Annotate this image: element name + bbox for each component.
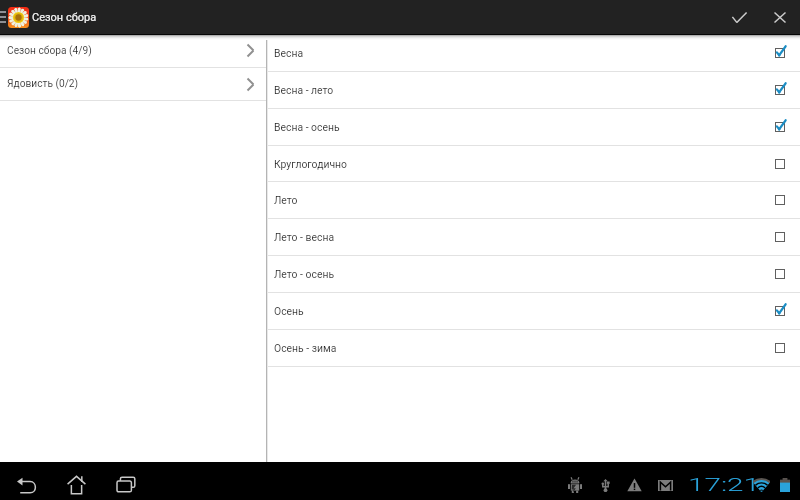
- button[interactable]: Recent apps: [108, 470, 144, 498]
- staticText: Весна - лето: [274, 84, 334, 96]
- staticText: Осень - зима: [274, 342, 337, 354]
- button[interactable]: Cancel: [760, 0, 799, 34]
- button[interactable]: Осень - зима: [268, 330, 800, 367]
- staticText: Весна: [274, 47, 304, 59]
- staticText: 17:21: [688, 473, 761, 495]
- staticText: Лето: [274, 194, 298, 206]
- staticText: Круглогодично: [274, 158, 348, 170]
- button[interactable]: Back: [8, 470, 44, 498]
- button[interactable]: Весна - лето: [268, 72, 800, 109]
- button[interactable]: USB connected: [601, 479, 610, 493]
- button[interactable]: Alert: [627, 478, 642, 492]
- staticText: Сезон сбора (4/9): [7, 45, 92, 57]
- button[interactable]: Лето - весна: [268, 219, 800, 256]
- staticText: Лето - осень: [274, 268, 335, 280]
- button[interactable]: Весна: [268, 34, 800, 72]
- button[interactable]: Home: [58, 471, 94, 499]
- staticText: Лето - весна: [274, 231, 335, 243]
- button[interactable]: Wi-Fi: [753, 478, 770, 492]
- staticText: Осень: [274, 305, 304, 317]
- button[interactable]: Весна - осень: [268, 109, 800, 146]
- button[interactable]: Осень: [268, 293, 800, 330]
- button[interactable]: New mail: [658, 480, 673, 491]
- button[interactable]: Лето - осень: [268, 256, 800, 293]
- button[interactable]: Battery: [780, 478, 790, 492]
- button[interactable]: USB debugging: [568, 477, 582, 493]
- button[interactable]: Done: [719, 0, 760, 34]
- button[interactable]: Лето: [268, 182, 800, 219]
- staticText: Сезон сбора: [32, 11, 97, 24]
- button[interactable]: Сезон сбора (4/9): [0, 34, 266, 68]
- button[interactable]: Круглогодично: [268, 146, 800, 182]
- button[interactable]: Ядовисть (0/2): [0, 68, 266, 101]
- staticText: Ядовисть (0/2): [7, 78, 79, 90]
- staticText: Весна - осень: [274, 121, 340, 133]
